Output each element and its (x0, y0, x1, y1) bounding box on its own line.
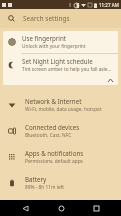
staticText: 11:27 AM (99, 2, 119, 8)
staticText: Tint screen amber to help you fall aslee… (22, 66, 113, 73)
staticText: Permissions, default apps (25, 158, 83, 165)
staticText: Battery (25, 175, 47, 183)
button[interactable]: Search settings (0, 9, 121, 28)
button[interactable]: Network & Internet (0, 92, 121, 118)
button[interactable]: Connected devices (0, 118, 121, 144)
button[interactable]: Set Night Light schedule (3, 54, 118, 76)
staticText: Unlock with your fingerprint (22, 43, 86, 50)
staticText: Search settings (23, 14, 70, 23)
staticText: Bluetooth, Cast, NFC (25, 132, 72, 139)
button[interactable]: Battery (0, 170, 121, 196)
staticText: Wi-Fi, mobile, data usage, hotspot (25, 106, 102, 113)
staticText: Apps & notifications (25, 149, 84, 157)
button[interactable]: Home (51, 200, 71, 216)
staticText: Set Night Light schedule (22, 57, 93, 65)
staticText: 89% - 8h 11m left (25, 184, 65, 191)
button[interactable]: Apps & notifications (0, 144, 121, 170)
button[interactable]: Use fingerprint (3, 31, 118, 53)
staticText: Connected devices (25, 123, 80, 131)
button[interactable]: Back (15, 200, 35, 216)
staticText: Use fingerprint (22, 34, 66, 42)
staticText: Network & Internet (25, 97, 82, 105)
button[interactable]: Recent apps (86, 200, 106, 216)
